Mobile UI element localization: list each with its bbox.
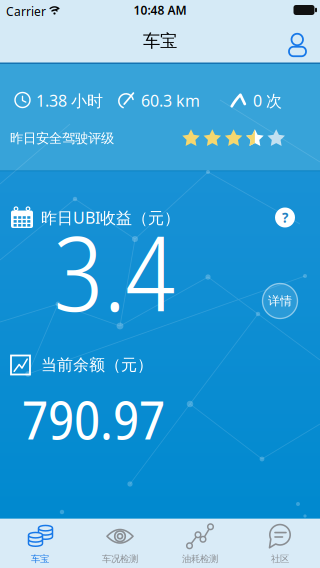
staticText: 详情: [268, 294, 292, 308]
button[interactable]: 车况检测: [80, 519, 160, 568]
staticText: 3.4: [53, 202, 175, 341]
staticText: 790.97: [22, 382, 165, 455]
button[interactable]: 社区: [240, 519, 320, 568]
button[interactable]: Profile: [282, 28, 306, 51]
staticText: 0 次: [253, 90, 282, 111]
staticText: ?: [282, 209, 288, 226]
staticText: 车况检测: [102, 553, 138, 565]
staticText: 当前余额（元）: [41, 355, 153, 375]
staticText: 60.3 km: [141, 90, 200, 111]
button[interactable]: 油耗检测: [160, 519, 240, 568]
staticText: 车宝: [31, 553, 49, 565]
button[interactable]: 详情: [262, 283, 297, 318]
button[interactable]: Help: [275, 207, 295, 227]
staticText: 社区: [271, 553, 289, 565]
staticText: Carrier: [6, 3, 46, 19]
staticText: 车宝: [143, 30, 177, 52]
staticText: 1.38 小时: [36, 90, 103, 111]
staticText: 昨日安全驾驶评级: [10, 130, 114, 146]
button[interactable]: 车宝: [0, 519, 80, 568]
staticText: 油耗检测: [182, 553, 218, 565]
staticText: 10:48 AM: [133, 2, 186, 18]
staticText: 昨日UBI收益（元）: [41, 207, 180, 228]
